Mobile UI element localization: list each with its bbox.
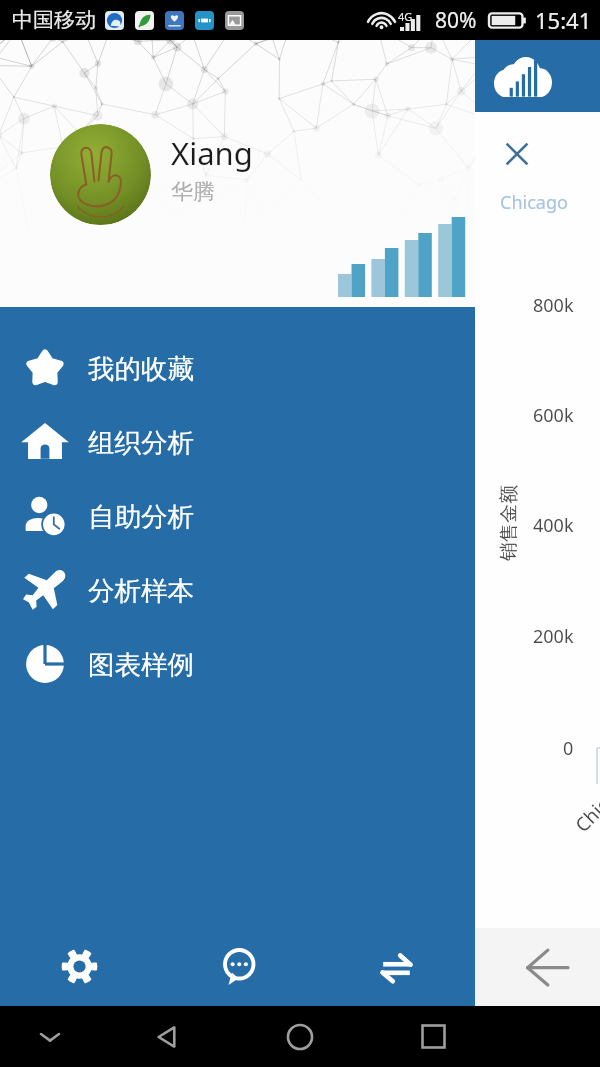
button[interactable]: Back [135,1006,199,1067]
button[interactable]: 分析样本 [0,553,475,627]
staticText: 4G [398,9,413,24]
staticText: 组织分析 [88,426,194,459]
staticText: 图表样例 [88,648,194,681]
staticText: 自助分析 [88,500,194,533]
button[interactable]: 我的收藏 [0,331,475,405]
button[interactable]: Switch [317,926,475,1006]
button[interactable]: Settings [0,926,159,1006]
button[interactable]: Messages [159,926,317,1006]
staticText: 我的收藏 [88,352,194,385]
button[interactable]: 组织分析 [0,405,475,479]
staticText: 华腾 [171,178,215,206]
staticText: 中国移动 [12,7,96,33]
staticText: 0 [563,736,574,761]
button[interactable]: 图表样例 [0,627,475,701]
staticText: Chicago [569,768,600,838]
staticText: 800k [533,293,574,318]
staticText: Chicago [500,190,568,215]
staticText: 80% [435,6,477,35]
staticText: 400k [533,513,574,538]
staticText: 销售金额 [497,485,521,561]
button[interactable]: Hide keyboard [18,1006,82,1067]
button[interactable]: Recents [401,1006,465,1067]
button[interactable]: 自助分析 [0,479,475,553]
staticText: 200k [533,624,574,649]
button[interactable]: Close [504,141,530,167]
staticText: Xiang [171,132,253,174]
button[interactable]: Back [515,941,579,993]
staticText: 分析样本 [88,574,194,607]
button[interactable]: Home [268,1006,332,1067]
staticText: 600k [533,403,574,428]
staticText: 15:41 [535,5,592,35]
